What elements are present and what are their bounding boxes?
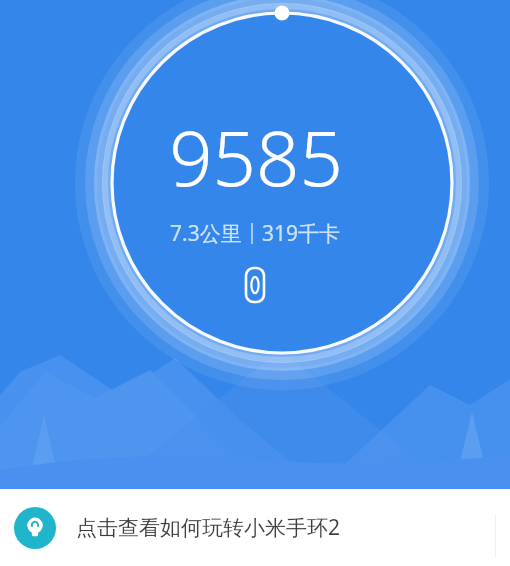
button[interactable]: Mi Band device bbox=[246, 268, 264, 302]
staticText: 点击查看如何玩转小米手环2 bbox=[76, 513, 341, 542]
staticText: 319千卡 bbox=[262, 219, 341, 248]
button[interactable]: 点击查看如何玩转小米手环2 bbox=[0, 489, 510, 566]
staticText: 9585 bbox=[169, 105, 343, 209]
staticText: 7.3公里 bbox=[170, 219, 242, 248]
